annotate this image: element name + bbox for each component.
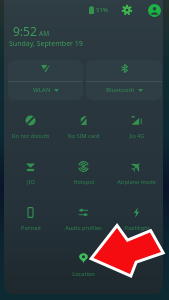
staticText: Bluetooth [106,86,135,94]
button[interactable]: Airplane mode [110,151,163,197]
staticText: Audio profiles [65,224,102,232]
staticText: Do not disturb [11,132,50,140]
staticText: Location [72,270,95,278]
staticText: Portrait [21,224,41,232]
staticText: AM [39,29,50,38]
button[interactable]: JIO [4,151,57,197]
button[interactable]: Location [57,243,110,289]
staticText: WLAN [33,86,51,94]
button[interactable]: No SIM card [57,105,110,151]
button[interactable]: Do not disturb [4,105,57,151]
staticText: Hotspot [73,178,95,186]
staticText: No SIM card [67,132,100,140]
staticText: 9:52 [13,23,37,39]
button[interactable]: Audio profiles [57,197,110,243]
button[interactable]: User account [147,3,161,17]
staticText: Airplane mode [117,178,156,186]
button[interactable]: Jio 4G [110,105,163,151]
staticText: Flashlight [124,224,150,232]
staticText: JIO [27,178,35,186]
button[interactable]: Bluetooth [86,60,162,100]
button[interactable]: Settings [120,3,134,17]
button[interactable]: Flashlight [110,197,163,243]
staticText: Jio 4G [129,132,145,140]
staticText: 51% [96,6,108,14]
button[interactable]: Hotspot [57,151,110,197]
button[interactable]: Portrait [4,197,57,243]
staticText: Sunday, September 19 [9,39,83,49]
button[interactable]: WLAN [8,60,83,100]
